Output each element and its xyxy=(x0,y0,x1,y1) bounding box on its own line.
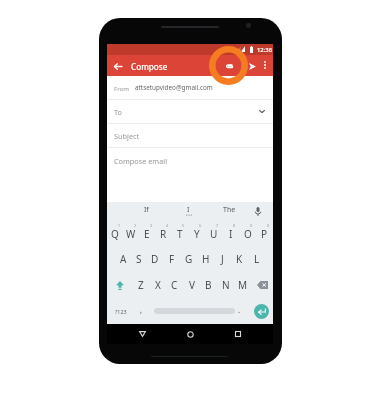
button[interactable]: E xyxy=(139,220,155,246)
button[interactable]: Z xyxy=(132,272,149,298)
button[interactable]: If xyxy=(128,202,165,220)
staticText: I xyxy=(229,227,233,241)
staticText: O xyxy=(244,227,252,241)
button[interactable]: P xyxy=(256,220,273,246)
staticText: , xyxy=(140,304,143,315)
button[interactable]: The xyxy=(211,202,248,220)
staticText: G xyxy=(185,252,193,266)
staticText: M xyxy=(238,278,248,292)
staticText: The xyxy=(223,205,236,215)
button[interactable]: M xyxy=(234,272,251,298)
button[interactable]: I xyxy=(222,220,239,246)
button[interactable]: Subject xyxy=(107,124,273,147)
staticText: If xyxy=(144,205,149,215)
staticText: Z xyxy=(138,278,144,292)
button[interactable]: ?123 xyxy=(107,298,132,324)
button[interactable]: G xyxy=(180,246,197,272)
staticText: S xyxy=(136,252,142,266)
button[interactable]: Backspace xyxy=(251,272,273,298)
staticText: 8 xyxy=(233,223,236,228)
button[interactable]: H xyxy=(197,246,214,272)
button[interactable]: Recents xyxy=(226,324,249,344)
staticText: J xyxy=(221,252,224,266)
staticText: 9 xyxy=(250,223,253,228)
staticText: X xyxy=(155,278,161,292)
staticText: E xyxy=(144,227,150,241)
button[interactable]: X xyxy=(149,272,166,298)
button[interactable]: W xyxy=(123,220,139,246)
button[interactable]: I xyxy=(165,202,211,220)
button[interactable]: Home xyxy=(179,324,202,344)
staticText: N xyxy=(222,278,230,292)
staticText: H xyxy=(202,252,210,266)
button[interactable]: Y xyxy=(188,220,205,246)
button[interactable]: , xyxy=(132,298,150,324)
staticText: Compose email xyxy=(114,156,168,166)
staticText: 4 xyxy=(166,223,169,228)
button[interactable]: O xyxy=(239,220,256,246)
staticText: A xyxy=(120,252,127,266)
staticText: 5 xyxy=(182,223,185,228)
button[interactable]: N xyxy=(217,272,234,298)
button[interactable]: F xyxy=(163,246,180,272)
staticText: P xyxy=(261,227,268,241)
staticText: 0 xyxy=(267,223,270,228)
button[interactable]: K xyxy=(231,246,248,272)
staticText: attsetupvideo@gmail.com xyxy=(135,83,213,92)
staticText: B xyxy=(205,278,212,292)
button[interactable]: More options xyxy=(258,58,272,72)
button[interactable]: Send xyxy=(244,58,260,74)
staticText: 7 xyxy=(216,223,219,228)
button[interactable]: V xyxy=(183,272,200,298)
staticText: T xyxy=(177,227,183,241)
button[interactable]: L xyxy=(248,246,265,272)
staticText: 1 xyxy=(118,223,121,228)
staticText: 3 xyxy=(150,223,153,228)
button[interactable]: Shift xyxy=(107,272,132,298)
staticText: R xyxy=(160,227,167,241)
button[interactable]: From xyxy=(107,76,273,99)
staticText: D xyxy=(151,252,159,266)
button[interactable]: C xyxy=(166,272,183,298)
button[interactable]: B xyxy=(200,272,217,298)
button[interactable]: . xyxy=(230,298,249,324)
button[interactable]: To xyxy=(107,100,273,123)
staticText: Subject xyxy=(114,131,140,141)
staticText: U xyxy=(210,227,218,241)
staticText: To xyxy=(114,107,122,117)
button[interactable]: Back xyxy=(131,324,154,344)
staticText: I xyxy=(187,205,190,215)
staticText: ?123 xyxy=(115,308,127,315)
staticText: L xyxy=(254,252,260,266)
button[interactable]: Enter xyxy=(249,298,273,324)
button[interactable]: S xyxy=(131,246,147,272)
button[interactable]: R xyxy=(155,220,171,246)
button[interactable]: Back xyxy=(110,58,126,74)
staticText: 6 xyxy=(199,223,202,228)
button[interactable]: U xyxy=(205,220,222,246)
staticText: K xyxy=(236,252,243,266)
button[interactable]: Attach file xyxy=(221,58,237,74)
button[interactable]: Compose email xyxy=(107,148,273,173)
staticText: F xyxy=(169,252,175,266)
button[interactable]: A xyxy=(115,246,131,272)
staticText: Y xyxy=(194,227,200,241)
button[interactable]: Space xyxy=(150,298,238,324)
staticText: W xyxy=(126,227,136,241)
staticText: Q xyxy=(111,227,119,241)
staticText: 2 xyxy=(134,223,137,228)
staticText: . xyxy=(238,304,241,315)
staticText: V xyxy=(189,278,195,292)
button[interactable]: Q xyxy=(107,220,123,246)
staticText: From xyxy=(114,84,129,92)
button[interactable]: Voice input xyxy=(249,202,267,220)
button[interactable]: J xyxy=(214,246,231,272)
button[interactable]: T xyxy=(171,220,188,246)
staticText: C xyxy=(171,278,178,292)
button[interactable]: D xyxy=(147,246,163,272)
staticText: Compose xyxy=(131,61,168,72)
staticText: 12:36 xyxy=(257,46,273,54)
